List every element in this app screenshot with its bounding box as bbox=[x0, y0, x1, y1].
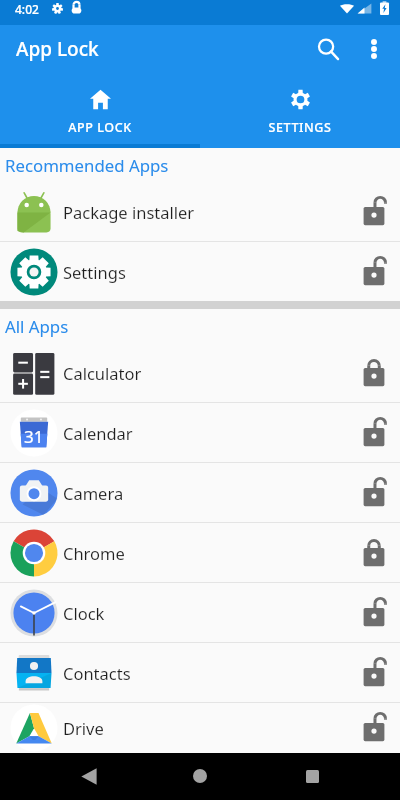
button[interactable]: Unlocked bbox=[353, 707, 395, 749]
button[interactable]: Home bbox=[177, 753, 223, 799]
staticText: 31 bbox=[24, 425, 44, 448]
staticText: Calculator bbox=[63, 362, 142, 384]
button[interactable]: APP LOCK bbox=[0, 77, 200, 148]
staticText: Package installer bbox=[63, 201, 195, 223]
button[interactable]: Locked bbox=[353, 532, 395, 574]
button[interactable]: Contacts bbox=[0, 643, 400, 702]
button[interactable]: Unlocked bbox=[353, 251, 395, 293]
staticText: 4:02 bbox=[15, 1, 39, 17]
staticText: App Lock bbox=[16, 36, 99, 62]
button[interactable]: Settings bbox=[0, 242, 400, 301]
staticText: Clock bbox=[63, 602, 105, 624]
staticText: Contacts bbox=[63, 662, 131, 684]
staticText: Chrome bbox=[63, 542, 125, 564]
button[interactable]: More options bbox=[352, 27, 396, 71]
button[interactable]: Clock bbox=[0, 583, 400, 642]
button[interactable]: SETTINGS bbox=[200, 77, 400, 148]
staticText: Settings bbox=[63, 261, 126, 283]
staticText: Recommended Apps bbox=[5, 154, 169, 177]
staticText: SETTINGS bbox=[268, 119, 332, 136]
staticText: Camera bbox=[63, 482, 124, 504]
button[interactable]: Unlocked bbox=[353, 472, 395, 514]
button[interactable]: Unlocked bbox=[353, 412, 395, 454]
button[interactable]: Unlocked bbox=[353, 652, 395, 694]
staticText: Calendar bbox=[63, 422, 133, 444]
button[interactable]: Recents bbox=[289, 753, 335, 799]
button[interactable]: Drive bbox=[0, 703, 400, 753]
button[interactable]: Camera bbox=[0, 463, 400, 522]
button[interactable]: Search bbox=[304, 25, 352, 73]
button[interactable]: Locked bbox=[353, 352, 395, 394]
button[interactable]: Chrome bbox=[0, 523, 400, 582]
button[interactable]: Package installer bbox=[0, 182, 400, 241]
staticText: All Apps bbox=[5, 315, 69, 338]
button[interactable]: 31 bbox=[0, 403, 400, 462]
staticText: APP LOCK bbox=[68, 119, 132, 136]
button[interactable]: Back bbox=[66, 753, 112, 799]
button[interactable]: Unlocked bbox=[353, 592, 395, 634]
button[interactable]: Unlocked bbox=[353, 191, 395, 233]
staticText: Drive bbox=[63, 717, 104, 739]
button[interactable]: Calculator bbox=[0, 343, 400, 402]
